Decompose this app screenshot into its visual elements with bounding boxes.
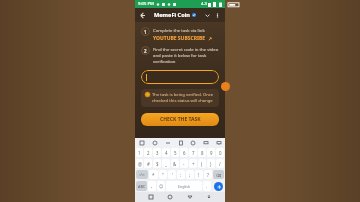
button[interactable]: Toolbar item 4 [189,139,196,146]
staticText: 1 [138,150,141,156]
staticText: 6 [183,150,186,156]
button[interactable]: Toolbar item 5 [202,139,209,146]
button[interactable]: & [171,159,179,168]
staticText: , [151,183,153,189]
button[interactable]: CHECK THE TASK [141,113,219,126]
button[interactable]: $ [153,159,161,168]
button[interactable]: 1 [136,148,143,157]
staticText: 1 [144,29,147,35]
button[interactable]: More options [213,11,222,20]
button[interactable]: Collapse [203,11,212,20]
button[interactable]: 2 [144,148,152,157]
button[interactable]: ' [168,170,176,179]
staticText: 5 [174,150,177,156]
staticText: $ [156,161,159,167]
staticText: & [173,161,177,167]
button[interactable]: ABC [136,181,147,191]
button[interactable]: Enter [214,182,223,191]
staticText: 8 [201,150,204,156]
button[interactable]: ; [186,170,194,179]
button[interactable]: : [177,170,185,179]
staticText: ' [172,172,173,178]
button[interactable]: Back [138,11,147,20]
staticText: =\< [139,172,145,177]
staticText: # [147,161,150,167]
staticText: 3 [156,150,159,156]
button[interactable]: 9 [207,148,215,157]
button[interactable]: ☺ [157,181,165,191]
button[interactable]: " [159,170,167,179]
button[interactable]: * [149,170,158,179]
staticText: ) [210,161,212,167]
staticText: 0 [219,150,222,156]
staticText: - [183,161,185,167]
button[interactable]: ( [198,159,206,168]
staticText: 2 [144,48,147,54]
button[interactable]: 3 [153,148,161,157]
staticText: ; [189,172,191,178]
staticText: MemeFi Coin [154,11,191,19]
staticText: CHECK THE TASK [160,116,201,123]
button[interactable]: , [148,181,156,191]
button[interactable]: 8 [198,148,206,157]
staticText: ? [207,172,209,178]
staticText: 4.3 [201,1,207,7]
button[interactable]: Back [186,193,194,201]
button[interactable]: 6 [180,148,188,157]
staticText: . [206,183,208,189]
button[interactable]: # [144,159,152,168]
staticText: / [219,161,221,167]
button[interactable]: 7 [189,148,197,157]
staticText: ( [201,161,203,167]
button[interactable]: ) [207,159,215,168]
staticText: 9 [210,150,213,156]
button[interactable]: Home [166,193,174,201]
staticText: + [192,161,195,167]
button[interactable]: Recents [147,193,155,201]
staticText: 4 [165,150,168,156]
staticText: English [178,184,191,189]
staticText: Complete the task via link [153,27,205,33]
button[interactable]: 0 [216,148,224,157]
button[interactable]: ! [195,170,203,179]
staticText: 9:05 PM [138,1,154,7]
button[interactable]: Toolbar item 6 [215,139,222,146]
button[interactable]: 4 [162,148,170,157]
button[interactable]: _ [162,159,170,168]
button[interactable]: - [180,159,188,168]
staticText: * [152,172,155,178]
button[interactable]: 5 [171,148,179,157]
button[interactable] [141,70,219,84]
staticText: The task is being verified. Once checked… [152,92,215,104]
staticText: ⌫ [216,173,222,177]
button[interactable]: Toolbar item 2 [164,139,171,146]
button[interactable]: ⌫ [213,170,224,179]
button[interactable]: Toolbar item 3 [177,139,184,146]
staticText: 2 [147,150,150,156]
button[interactable]: Toolbar item 1 [151,139,158,146]
button[interactable]: / [216,159,224,168]
staticText: ! [198,172,200,178]
staticText: ABC [138,184,146,189]
button[interactable]: + [189,159,197,168]
staticText: : [180,172,182,178]
button[interactable]: English [166,181,202,191]
button[interactable]: Keyboard [205,193,213,201]
staticText: YOUTUBE SUBSCRIBE [153,35,206,42]
staticText: " [162,172,164,178]
staticText: _ [165,161,167,167]
button[interactable]: . [203,181,211,191]
button[interactable]: ? [204,170,212,179]
button[interactable]: Coin [221,82,230,91]
staticText: 7 [192,150,195,156]
staticText: Find the secret code in the video and pa… [153,46,219,64]
staticText: ☺ [159,184,164,189]
staticText: @ [138,161,142,167]
button[interactable]: Toolbar item 0 [138,139,145,146]
button[interactable]: @ [136,159,143,168]
button[interactable]: =\< [136,170,148,179]
